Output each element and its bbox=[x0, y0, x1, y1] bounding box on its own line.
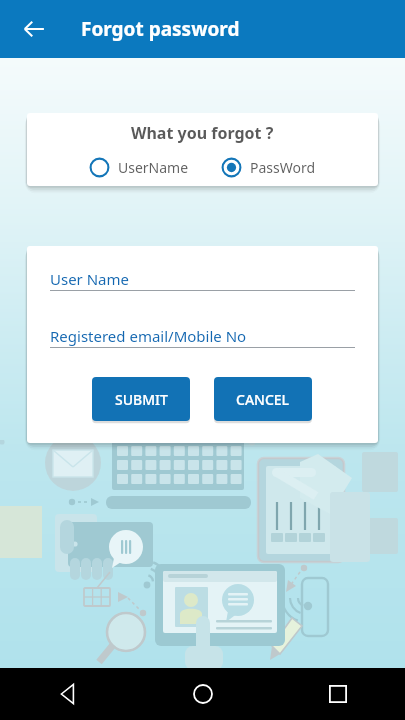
button[interactable]: SUBMIT bbox=[92, 377, 190, 421]
button[interactable]: Recents bbox=[270, 668, 405, 720]
staticText: User Name bbox=[50, 269, 130, 289]
button[interactable]: Back bbox=[0, 668, 135, 720]
staticText: Registered email/Mobile No bbox=[50, 326, 247, 346]
button[interactable]: CANCEL bbox=[214, 377, 312, 421]
button[interactable]: Home bbox=[135, 668, 270, 720]
staticText: What you forgot ? bbox=[131, 122, 274, 144]
staticText: Forgot password bbox=[81, 16, 240, 42]
staticText: PassWord bbox=[250, 158, 316, 177]
button[interactable]: UserName bbox=[87, 155, 191, 180]
staticText: UserName bbox=[118, 158, 189, 177]
staticText: SUBMIT bbox=[115, 390, 168, 409]
button[interactable]: User Name bbox=[50, 266, 355, 292]
staticText: CANCEL bbox=[236, 390, 290, 409]
button[interactable]: Registered email/Mobile No bbox=[50, 323, 355, 349]
button[interactable]: Back bbox=[14, 9, 54, 49]
button[interactable]: PassWord bbox=[219, 155, 318, 180]
